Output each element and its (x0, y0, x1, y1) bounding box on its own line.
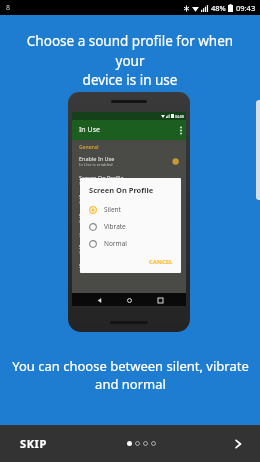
staticText: Screen On Profile (79, 174, 124, 181)
button[interactable]: Home (125, 296, 133, 304)
staticText: CANCEL (149, 258, 173, 266)
staticText: 48% (211, 3, 226, 13)
staticText: Normal (104, 239, 127, 248)
staticText: 14:00 (79, 269, 90, 275)
button[interactable]: Back (95, 296, 103, 304)
staticText: 09:43 (236, 3, 256, 13)
button[interactable]: Silent (80, 201, 181, 218)
button[interactable]: Start time (72, 259, 186, 278)
staticText: In Use is enabled (79, 162, 113, 168)
button[interactable]: In Use (72, 120, 186, 140)
staticText: 04:00 (175, 114, 184, 119)
staticText: 8 (6, 3, 11, 13)
staticText: Schedule (79, 232, 102, 239)
button[interactable]: Schedule (72, 240, 186, 259)
button[interactable]: More options (176, 126, 186, 135)
staticText: You can choose between silent, vibrate a… (11, 357, 250, 393)
staticText: Enable automatically after booting (79, 219, 147, 225)
staticText: Silent (79, 181, 90, 187)
staticText: Schedule (79, 243, 103, 250)
staticText: Enable In Use (79, 155, 115, 162)
button[interactable]: Screen Off Profile (72, 190, 186, 209)
button[interactable]: Next (216, 425, 260, 462)
button[interactable]: Screen On Profile (72, 171, 186, 190)
staticText: Screen On Profile (89, 185, 154, 195)
button[interactable]: Normal (80, 235, 181, 252)
staticText: Vibrate (104, 222, 126, 231)
button[interactable]: Start on boot (72, 209, 186, 228)
staticText: Normal (79, 200, 94, 206)
staticText: General (79, 144, 99, 151)
staticText: In Use (79, 125, 100, 135)
button[interactable]: SKIP (0, 425, 67, 462)
staticText: Choose a sound profile for when your dev… (13, 32, 247, 89)
button[interactable]: CANCEL (141, 254, 181, 270)
button[interactable]: Vibrate (80, 218, 181, 235)
button[interactable]: Toggle Enable In Use (170, 158, 179, 165)
staticText: SKIP (20, 436, 47, 451)
button[interactable]: Enable In Use (72, 152, 186, 171)
staticText: Screen Off Profile (79, 193, 125, 200)
staticText: Start on boot (79, 212, 113, 219)
staticText: Silent (104, 205, 121, 214)
staticText: Start time (79, 262, 105, 269)
staticText: Schedule is enabled (79, 250, 119, 256)
button[interactable]: Recents (156, 296, 164, 304)
